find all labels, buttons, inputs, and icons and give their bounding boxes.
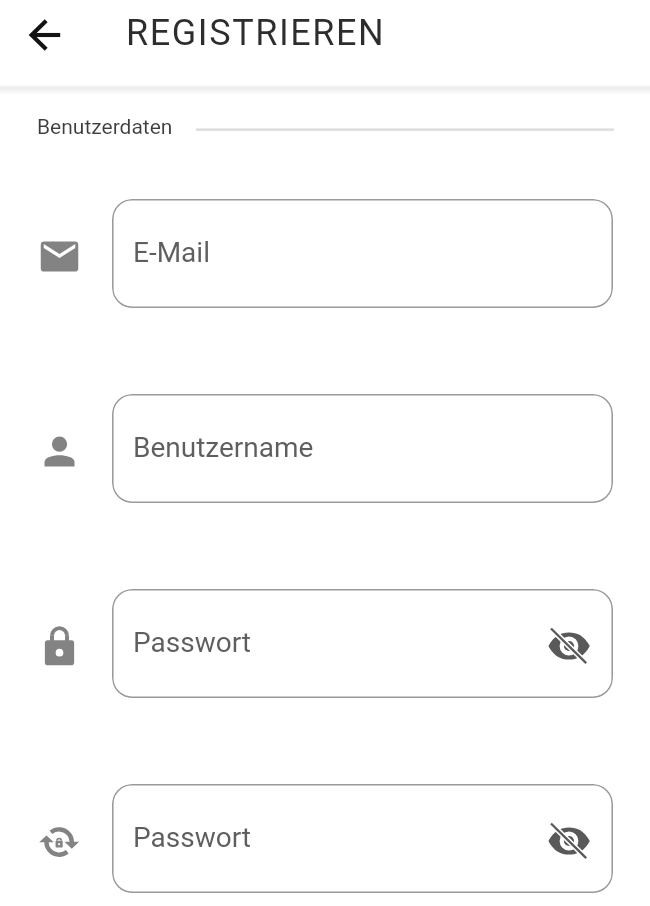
button[interactable]: Passwort bbox=[112, 784, 613, 893]
button[interactable]: Show password bbox=[545, 817, 593, 865]
button[interactable]: Show password bbox=[545, 622, 593, 670]
staticText: Passwort bbox=[133, 821, 251, 854]
staticText: REGISTRIEREN bbox=[126, 12, 386, 54]
staticText: Benutzername bbox=[133, 431, 314, 464]
staticText: Passwort bbox=[133, 626, 251, 659]
button[interactable]: Passwort bbox=[112, 589, 613, 698]
staticText: E-Mail bbox=[133, 236, 210, 269]
button[interactable]: Benutzername bbox=[112, 394, 613, 503]
button[interactable]: Back bbox=[21, 11, 69, 59]
staticText: Benutzerdaten bbox=[37, 115, 173, 140]
button[interactable]: E-Mail bbox=[112, 199, 613, 308]
